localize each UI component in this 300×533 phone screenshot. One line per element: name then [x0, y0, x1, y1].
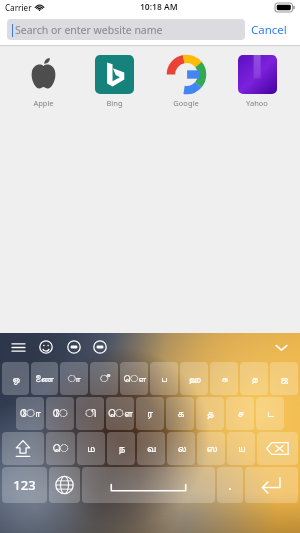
staticText: ா	[67, 374, 81, 384]
button[interactable]: க	[166, 397, 194, 430]
staticText: Apple	[33, 98, 54, 108]
staticText: ணை	[35, 374, 54, 384]
staticText: ல	[177, 443, 186, 454]
staticText: ே	[52, 408, 68, 419]
button[interactable]: ணை	[31, 362, 58, 395]
button[interactable]: ல	[167, 432, 195, 465]
button[interactable]: Cancel	[245, 18, 293, 42]
button[interactable]: ௌ	[120, 362, 148, 395]
staticText: வ	[146, 443, 156, 454]
staticText: ீ	[100, 374, 108, 384]
staticText: Cancel	[251, 22, 287, 38]
staticText: 10:18 AM	[140, 1, 178, 13]
button[interactable]: ஜ	[270, 362, 298, 395]
button[interactable]: Google	[157, 53, 215, 110]
staticText: ௌ	[123, 374, 146, 384]
staticText: ம	[87, 443, 95, 454]
button[interactable]: Art	[64, 337, 84, 357]
staticText: த	[206, 408, 214, 419]
button[interactable]: ந	[107, 432, 135, 465]
button[interactable]: Change keyboard	[49, 467, 80, 503]
button[interactable]: ெ	[46, 432, 75, 465]
button[interactable]: .	[217, 467, 243, 503]
button[interactable]: ச	[226, 397, 254, 430]
staticText: Yahoo	[246, 98, 268, 108]
staticText: ி	[85, 408, 96, 419]
staticText: Google	[173, 98, 199, 108]
button[interactable]: Return	[245, 467, 298, 503]
button[interactable]: 123	[2, 467, 47, 503]
staticText: 123	[13, 476, 36, 494]
staticText: Search or enter website name	[15, 23, 163, 37]
staticText: ஹ	[188, 374, 201, 384]
button[interactable]: ே	[46, 397, 74, 430]
button[interactable]: Emoji	[36, 337, 56, 357]
button[interactable]: ோ	[16, 397, 44, 430]
button[interactable]: ப	[150, 362, 178, 395]
button[interactable]: ய	[227, 432, 255, 465]
button[interactable]: வ	[137, 432, 165, 465]
button[interactable]: Art	[90, 337, 110, 357]
button[interactable]: Shift	[2, 432, 44, 465]
staticText: ந	[118, 443, 125, 454]
staticText: ப	[161, 374, 167, 384]
button[interactable]: ா	[60, 362, 88, 395]
staticText: .	[228, 477, 232, 493]
button[interactable]: த	[240, 362, 268, 395]
staticText: ஸ	[206, 443, 217, 454]
button[interactable]: ஒ	[2, 362, 29, 395]
button[interactable]: Yahoo	[228, 53, 286, 110]
staticText: ஜ	[280, 374, 288, 384]
staticText: Carrier	[5, 2, 32, 13]
staticText: ெ	[52, 443, 69, 454]
button[interactable]: ஹ	[180, 362, 208, 395]
staticText: ய	[238, 443, 245, 454]
staticText: க	[177, 408, 184, 419]
staticText: க	[221, 374, 228, 384]
button[interactable]: ட	[256, 397, 284, 430]
button[interactable]: ம	[77, 432, 105, 465]
button[interactable]: ௌ	[106, 397, 134, 430]
staticText: Bing	[106, 98, 123, 108]
staticText: ௌ	[107, 408, 133, 419]
staticText: ர	[147, 408, 153, 419]
staticText: ஒ	[12, 374, 20, 384]
button[interactable]: Backspace	[257, 432, 298, 465]
button[interactable]: Menu	[8, 337, 28, 357]
staticText: ச	[237, 408, 244, 419]
staticText: த	[251, 374, 258, 384]
button[interactable]: Apple	[14, 53, 72, 110]
button[interactable]: Search or enter website name	[7, 19, 245, 40]
button[interactable]: க	[210, 362, 238, 395]
staticText: ோ	[19, 408, 41, 419]
button[interactable]: ர	[136, 397, 164, 430]
button[interactable]: ி	[76, 397, 104, 430]
button[interactable]: Bing	[85, 53, 143, 110]
button[interactable]: Hide keyboard	[270, 336, 292, 358]
button[interactable]: Space	[82, 467, 215, 503]
button[interactable]: ீ	[90, 362, 118, 395]
staticText: ட	[267, 408, 274, 419]
button[interactable]: த	[196, 397, 224, 430]
button[interactable]: ஸ	[197, 432, 225, 465]
